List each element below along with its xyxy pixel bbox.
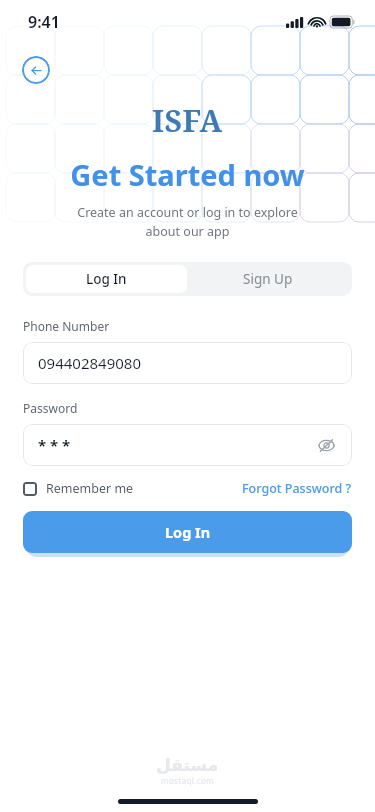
button[interactable]: Sign Up — [187, 265, 349, 293]
staticText: Log In — [165, 522, 211, 542]
staticText: * * * — [38, 435, 71, 455]
button[interactable]: 094402849080 — [23, 342, 352, 384]
staticText: Log In — [86, 270, 127, 288]
staticText: مستقل — [156, 755, 219, 775]
staticText: 094402849080 — [38, 353, 141, 373]
staticText: Phone Number — [23, 318, 110, 334]
staticText: Password — [23, 400, 78, 416]
staticText: Forgot Password ? — [242, 480, 352, 497]
button[interactable]: Log In — [26, 265, 187, 293]
staticText: Remember me — [46, 480, 134, 497]
button[interactable]: Show password — [315, 434, 337, 456]
staticText: 9:41 — [28, 11, 60, 33]
staticText: Get Started now — [70, 155, 305, 194]
button[interactable]: Forgot Password ? — [242, 480, 352, 497]
button[interactable]: * * * — [23, 424, 352, 466]
button[interactable]: Remember me — [23, 480, 134, 497]
staticText: Sign Up — [243, 270, 293, 288]
staticText: Create an account or log in to explore a… — [77, 204, 298, 240]
button[interactable]: Back — [22, 56, 50, 84]
button[interactable]: Log In — [23, 511, 352, 553]
staticText: mostaql.com — [161, 775, 215, 786]
staticText: ISFA — [152, 100, 223, 141]
